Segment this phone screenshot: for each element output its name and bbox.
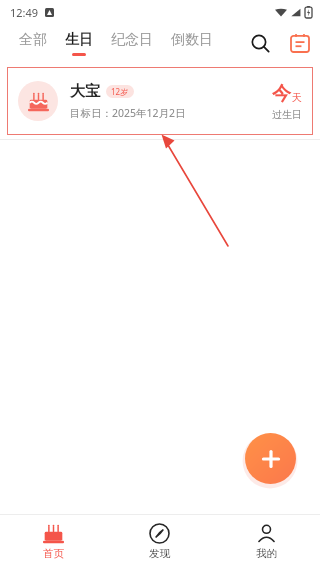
staticText: 天 — [292, 91, 302, 104]
staticText: 12岁 — [111, 86, 129, 97]
staticText: 发现 — [149, 547, 170, 560]
button[interactable]: Search — [240, 24, 280, 62]
button[interactable]: 大宝 — [7, 67, 313, 135]
staticText: 首页 — [43, 547, 64, 560]
button[interactable]: 首页 — [0, 515, 106, 568]
staticText: 过生日 — [272, 108, 302, 121]
button[interactable]: 纪念日 — [102, 24, 162, 62]
staticText: 生日 — [65, 31, 93, 49]
staticText: 目标日：2025年12月2日 — [70, 106, 186, 120]
button[interactable]: 倒数日 — [162, 24, 222, 62]
staticText: 倒数日 — [171, 31, 213, 49]
button[interactable]: 生日 — [56, 24, 102, 62]
staticText: 全部 — [19, 31, 47, 49]
button[interactable]: 全部 — [10, 24, 56, 62]
button[interactable]: Add — [245, 433, 296, 484]
staticText: 大宝 — [70, 82, 100, 101]
button[interactable]: Calendar — [280, 24, 320, 62]
staticText: 今 — [272, 82, 291, 106]
staticText: 我的 — [256, 547, 277, 560]
button[interactable]: 发现 — [106, 515, 213, 568]
staticText: 纪念日 — [111, 31, 153, 49]
staticText: 12:49 — [10, 5, 39, 20]
button[interactable]: 我的 — [213, 515, 320, 568]
